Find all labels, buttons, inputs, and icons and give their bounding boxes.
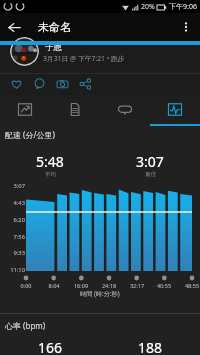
- button[interactable]: Details: [50, 95, 100, 126]
- staticText: 6:20: [0, 216, 25, 224]
- staticText: 子恩: [45, 42, 62, 53]
- staticText: 4:43: [0, 199, 25, 207]
- staticText: 平均: [45, 171, 56, 178]
- staticText: 0:00: [17, 282, 35, 289]
- staticText: 心率 (bpm): [5, 320, 46, 331]
- staticText: 7:56: [0, 233, 25, 241]
- staticText: 5:48: [36, 152, 64, 171]
- button[interactable]: Laps: [100, 95, 150, 126]
- staticText: 配速 (分/公里): [5, 129, 55, 140]
- staticText: 下午9:06: [169, 2, 197, 12]
- staticText: 40:55: [155, 282, 173, 289]
- button[interactable]: Photo: [51, 73, 74, 95]
- staticText: 16:09: [72, 282, 90, 289]
- button[interactable]: Like: [5, 73, 28, 95]
- staticText: 24:18: [100, 282, 118, 289]
- staticText: 未命名: [38, 20, 71, 34]
- button[interactable]: Comment: [28, 73, 51, 95]
- button[interactable]: More options: [172, 13, 200, 41]
- button[interactable]: Profile photo: [10, 37, 39, 66]
- staticText: 8:04: [45, 282, 63, 289]
- button[interactable]: Share: [74, 73, 97, 95]
- button[interactable]: Map: [0, 95, 50, 126]
- staticText: 9:33: [0, 249, 25, 257]
- staticText: 3:07: [136, 152, 164, 171]
- staticText: 20%: [141, 2, 155, 12]
- staticText: 188: [138, 338, 163, 355]
- staticText: 11:10: [0, 266, 25, 274]
- staticText: 時間 (時:分:秒): [80, 289, 120, 297]
- staticText: 3月31日 @ 下午7:21 • 跑步: [43, 54, 125, 63]
- staticText: 3:07: [0, 182, 25, 190]
- staticText: 32:17: [128, 282, 146, 289]
- button[interactable]: Charts: [150, 95, 200, 126]
- staticText: 48:55: [183, 282, 200, 289]
- staticText: 最佳: [145, 171, 156, 178]
- button[interactable]: Back: [0, 13, 28, 41]
- staticText: 166: [38, 338, 63, 355]
